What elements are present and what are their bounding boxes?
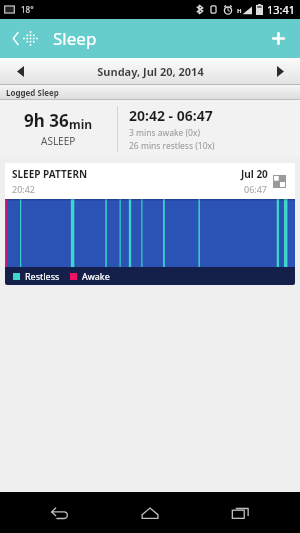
button[interactable]: Expand chart [270, 172, 288, 190]
staticText: 3 mins awake (0x) [129, 127, 200, 139]
staticText: Sunday, Jul 20, 2014 [97, 64, 204, 79]
button[interactable]: Up, navigate back [5, 19, 47, 58]
button[interactable]: 9h 36 [0, 100, 300, 157]
button[interactable]: Add [256, 19, 300, 58]
button[interactable]: Recent apps [210, 492, 270, 533]
button[interactable]: Previous day [0, 58, 40, 85]
staticText: ASLEEP [41, 134, 76, 148]
button[interactable]: Home [120, 492, 180, 533]
staticText: 9h 36 [24, 109, 69, 132]
staticText: 13:41 [267, 2, 296, 17]
staticText: 20:42 [12, 183, 36, 195]
staticText: 06:47 [244, 183, 268, 195]
staticText: 20:42 - 06:47 [129, 106, 213, 125]
staticText: Awake [82, 270, 110, 282]
staticText: H [237, 7, 242, 15]
staticText: 18° [21, 4, 34, 15]
staticText: Jul 20 [241, 167, 268, 181]
staticText: SLEEP PATTERN [12, 167, 88, 181]
button[interactable]: Back [30, 492, 90, 533]
staticText: Restless [25, 270, 60, 282]
staticText: min [69, 116, 93, 132]
staticText: 26 mins restless (10x) [129, 140, 215, 152]
button[interactable]: SLEEP PATTERN [5, 163, 295, 285]
staticText: Logged Sleep [6, 87, 59, 98]
button[interactable]: Next day [260, 58, 300, 85]
staticText: Sleep [53, 27, 97, 50]
